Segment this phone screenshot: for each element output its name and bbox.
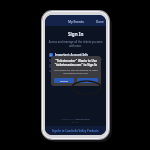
staticText: Continue bbox=[82, 79, 93, 82]
other: Information bbox=[49, 53, 53, 57]
button[interactable]: Sign In to Coachella Valley Products bbox=[45, 126, 106, 135]
staticText: v2.14.1 bbox=[72, 121, 80, 124]
staticText: My Events bbox=[68, 20, 84, 24]
staticText: Sign In bbox=[68, 31, 84, 37]
staticText: Done bbox=[96, 20, 104, 24]
staticText: This allows the app and website to share bbox=[54, 69, 98, 72]
staticText: Access and manage all the tickets you ow… bbox=[48, 40, 103, 44]
staticText: information about you. bbox=[54, 72, 98, 75]
button[interactable]: Continue bbox=[77, 78, 98, 83]
staticText: "ticketmaster.com" to Sign In bbox=[54, 63, 98, 67]
staticText: Important: Account Info bbox=[55, 53, 89, 57]
button[interactable]: Information bbox=[45, 53, 106, 57]
staticText: "Ticketmaster" Wants to Use bbox=[54, 59, 98, 63]
button[interactable]: Done bbox=[94, 19, 106, 25]
staticText: with ease. bbox=[45, 44, 106, 48]
staticText: Cancel bbox=[60, 79, 68, 82]
staticText: Sign In to Coachella Valley Products bbox=[52, 129, 99, 133]
button[interactable]: Cancel bbox=[54, 78, 74, 83]
staticText: ticketmaster bbox=[75, 117, 90, 120]
staticText: Powered by bbox=[61, 117, 75, 120]
